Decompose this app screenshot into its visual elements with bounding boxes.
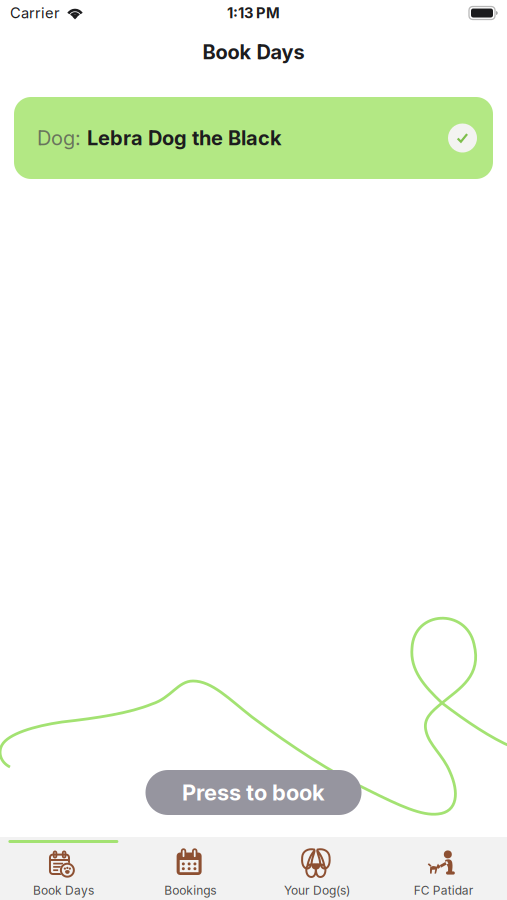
staticText: 1:13 PM xyxy=(227,4,280,22)
staticText: Lebra Dog the Black xyxy=(87,126,282,150)
staticText: Bookings xyxy=(164,883,216,897)
staticText: Your Dog(s) xyxy=(284,883,350,897)
button[interactable]: Bookings xyxy=(127,837,254,900)
staticText: Book Days xyxy=(202,40,304,64)
button[interactable]: FC Patidar xyxy=(380,837,507,900)
staticText: Dog: xyxy=(37,126,87,150)
staticText: Book Days xyxy=(33,883,94,897)
button[interactable]: Dog: xyxy=(14,97,493,179)
staticText: FC Patidar xyxy=(414,883,474,897)
button[interactable]: Your Dog(s) xyxy=(253,837,380,900)
button[interactable]: Press to book xyxy=(145,770,361,815)
staticText: Carrier xyxy=(10,4,60,22)
button[interactable]: Book Days xyxy=(0,837,127,900)
staticText: Press to book xyxy=(182,779,325,806)
